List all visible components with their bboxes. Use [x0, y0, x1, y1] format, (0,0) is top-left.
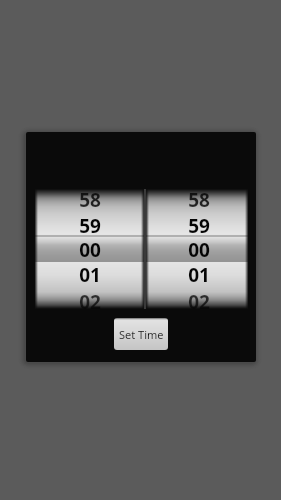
staticText: 00: [79, 237, 101, 259]
staticText: 59: [79, 213, 101, 235]
staticText: 58: [188, 187, 210, 209]
staticText: 02: [79, 289, 101, 311]
button[interactable]: Set Time: [114, 318, 168, 350]
staticText: 58: [79, 187, 101, 209]
staticText: 00: [188, 237, 210, 259]
staticText: 01: [188, 262, 210, 284]
staticText: 59: [188, 213, 210, 235]
staticText: 01: [79, 262, 101, 284]
staticText: Set Time: [119, 327, 164, 342]
staticText: 02: [188, 289, 210, 311]
